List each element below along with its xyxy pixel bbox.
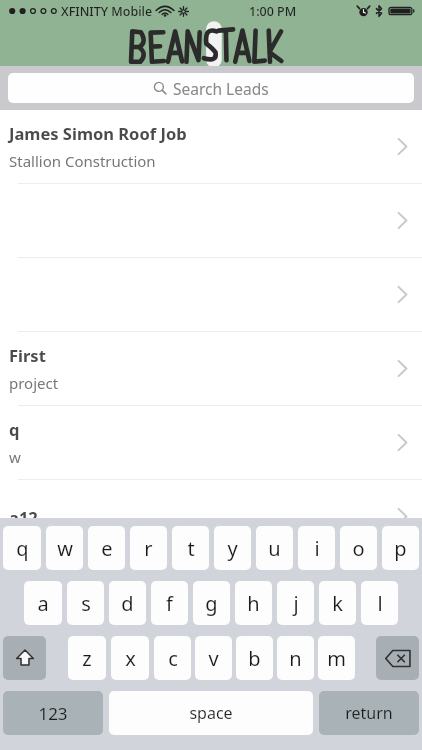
staticText: j [293, 590, 299, 617]
button[interactable]: a [24, 581, 62, 625]
staticText: p [394, 535, 407, 562]
button[interactable]: b [236, 636, 273, 680]
staticText: c [168, 645, 178, 672]
button[interactable]: e [88, 526, 125, 570]
staticText: 1:00 PM [249, 3, 297, 20]
staticText: a12 [9, 506, 38, 528]
staticText: w [57, 535, 73, 562]
staticText: First [9, 344, 46, 366]
button[interactable]: g [193, 581, 230, 625]
button[interactable]: q [3, 526, 41, 570]
staticText: XFINITY Mobile [61, 3, 153, 20]
button[interactable]: k [319, 581, 356, 625]
staticText: v [208, 645, 219, 672]
button[interactable]: i [298, 526, 335, 570]
button[interactable]: q [0, 406, 422, 479]
button[interactable]: p [382, 526, 419, 570]
staticText: space [189, 702, 233, 724]
staticText: u [268, 535, 281, 562]
button[interactable]: r [130, 526, 167, 570]
button[interactable]: Search Leads [8, 73, 414, 103]
staticText: t [187, 535, 195, 562]
staticText: y [227, 535, 238, 562]
button[interactable]: l [361, 581, 398, 625]
button[interactable]: James Simon Roof Job [0, 110, 422, 183]
button[interactable]: First [0, 332, 422, 405]
button[interactable]: a12 [0, 480, 422, 553]
staticText: f [166, 590, 173, 617]
staticText: o [352, 535, 365, 562]
button[interactable]: n [277, 636, 314, 680]
staticText: g [205, 590, 218, 617]
button[interactable]: v [195, 636, 232, 680]
button[interactable]: z [68, 636, 106, 680]
button[interactable]: u [256, 526, 293, 570]
button[interactable]: y [214, 526, 251, 570]
button[interactable]: o [340, 526, 377, 570]
button[interactable]: w [46, 526, 83, 570]
button[interactable]: Backspace [376, 636, 419, 680]
staticText: e [101, 535, 113, 562]
staticText: m [327, 645, 346, 672]
staticText: James Simon Roof Job [9, 122, 187, 144]
staticText: return [345, 702, 393, 724]
button[interactable]: space [109, 691, 313, 735]
staticText: h [247, 590, 260, 617]
button[interactable]: return [319, 691, 419, 735]
staticText: z [82, 645, 92, 672]
button[interactable]: t [172, 526, 209, 570]
staticText: a [37, 590, 49, 617]
staticText: Stallion Construction [9, 151, 156, 171]
staticText: b [248, 645, 261, 672]
staticText: x [125, 645, 136, 672]
staticText: q [16, 535, 29, 562]
staticText: project [9, 373, 59, 393]
staticText: q [9, 418, 20, 440]
staticText: r [144, 535, 153, 562]
button[interactable]: x [111, 636, 149, 680]
button[interactable]: h [235, 581, 272, 625]
button[interactable]: c [154, 636, 191, 680]
staticText: Search Leads [173, 78, 269, 99]
button[interactable]: f [151, 581, 188, 625]
staticText: 123 [38, 702, 68, 725]
button[interactable]: s [67, 581, 104, 625]
staticText: s [81, 590, 91, 617]
button[interactable]: d [109, 581, 146, 625]
button[interactable]: 123 [3, 691, 103, 735]
staticText: w [9, 447, 21, 467]
button[interactable]: m [318, 636, 355, 680]
staticText: n [289, 645, 302, 672]
button[interactable]: Shift [3, 636, 46, 680]
staticText: k [332, 590, 343, 617]
button[interactable]: j [277, 581, 314, 625]
staticText: i [314, 535, 320, 562]
staticText: l [377, 590, 383, 617]
staticText: d [121, 590, 134, 617]
